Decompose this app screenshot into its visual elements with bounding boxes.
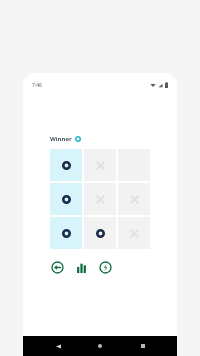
button[interactable] bbox=[84, 217, 116, 249]
staticText: Winner bbox=[50, 135, 72, 143]
button[interactable]: Recents bbox=[135, 338, 151, 354]
button[interactable]: Home bbox=[92, 338, 108, 354]
staticText: 7:46 bbox=[32, 82, 42, 89]
button[interactable] bbox=[50, 183, 82, 215]
button[interactable] bbox=[50, 149, 82, 181]
button[interactable]: Restart bbox=[98, 260, 113, 275]
button[interactable]: Undo bbox=[50, 260, 65, 275]
button[interactable] bbox=[50, 217, 82, 249]
button[interactable]: Statistics bbox=[74, 260, 89, 275]
button[interactable]: Back bbox=[50, 338, 66, 354]
